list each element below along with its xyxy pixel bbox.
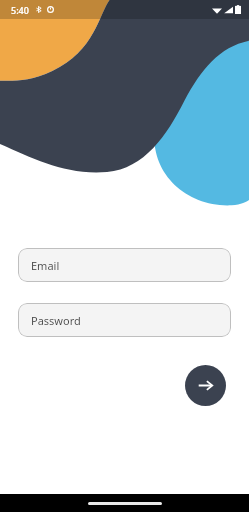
button[interactable]: Email bbox=[18, 248, 231, 282]
staticText: Email bbox=[31, 258, 60, 273]
staticText: 5:40 bbox=[11, 4, 29, 16]
staticText: Password bbox=[31, 313, 81, 328]
button[interactable]: Password bbox=[18, 303, 231, 337]
button[interactable]: Next bbox=[185, 365, 226, 406]
